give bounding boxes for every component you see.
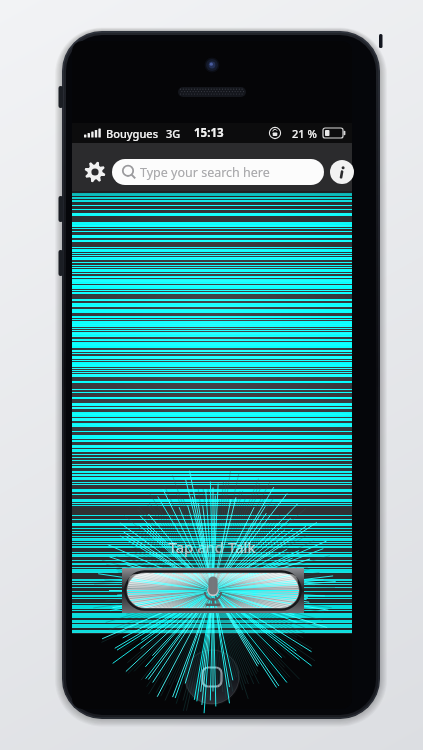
button[interactable]: Tap and Talk microphone — [122, 568, 304, 613]
button[interactable]: Settings — [80, 157, 110, 187]
button[interactable]: Info — [329, 159, 355, 185]
button[interactable] — [112, 159, 324, 185]
